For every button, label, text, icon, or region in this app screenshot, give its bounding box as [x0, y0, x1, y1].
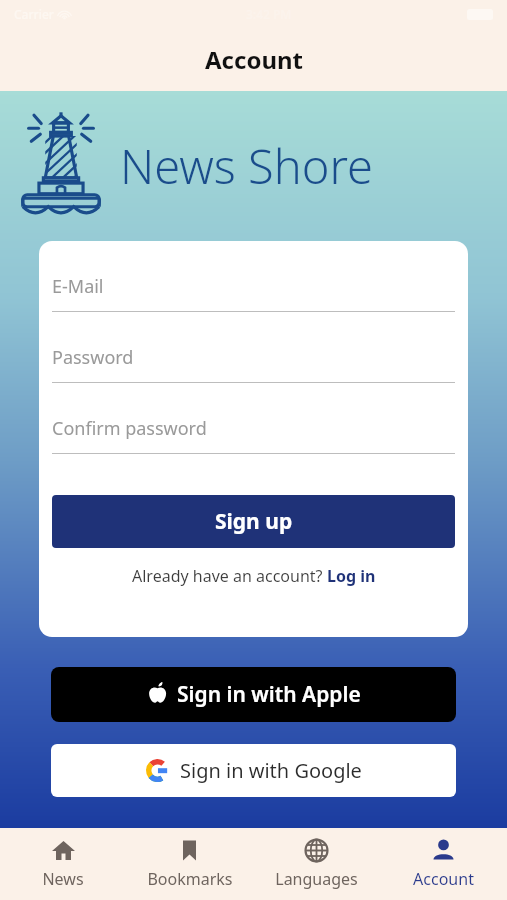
- button[interactable]: Account: [380, 838, 507, 890]
- button[interactable]: Bookmarks: [126, 838, 253, 890]
- button[interactable]: Languages: [253, 838, 380, 890]
- staticText: Password: [52, 345, 134, 370]
- button[interactable]: Sign in with Apple: [51, 667, 456, 722]
- staticText: Carrier: [14, 6, 54, 22]
- staticText: Account: [205, 43, 303, 76]
- button[interactable]: E-Mail: [52, 261, 455, 311]
- button[interactable]: Password: [52, 332, 455, 382]
- staticText: Account: [413, 868, 474, 890]
- staticText: Sign up: [215, 507, 293, 536]
- staticText: Bookmarks: [147, 868, 233, 890]
- button[interactable]: Sign in with Google: [51, 744, 456, 797]
- staticText: Languages: [275, 868, 358, 890]
- staticText: Already have an account?: [132, 565, 327, 587]
- staticText: E-Mail: [52, 274, 104, 299]
- button[interactable]: Confirm password: [52, 403, 455, 453]
- button[interactable]: Sign up: [52, 495, 455, 548]
- staticText: Sign in with Apple: [177, 680, 361, 709]
- button[interactable]: News: [0, 838, 126, 890]
- staticText: News Shore: [120, 134, 373, 198]
- staticText: News: [42, 868, 84, 890]
- staticText: Log in: [327, 565, 376, 587]
- button[interactable]: Already have an account?: [52, 565, 455, 587]
- staticText: Sign in with Google: [180, 757, 362, 784]
- staticText: Confirm password: [52, 416, 207, 441]
